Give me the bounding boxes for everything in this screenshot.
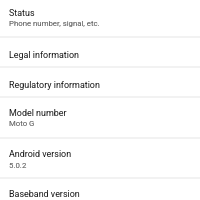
- staticText: Status: [9, 8, 35, 18]
- staticText: Baseband version: [9, 189, 80, 199]
- staticText: Model number: [9, 108, 67, 118]
- staticText: Baseband version: [9, 189, 80, 199]
- button[interactable]: Android version: [0, 139, 200, 179]
- staticText: Android version: [9, 149, 72, 159]
- staticText: Model number: [9, 108, 67, 118]
- staticText: Moto G: [9, 119, 35, 128]
- staticText: Legal information: [9, 50, 79, 60]
- staticText: Android version: [9, 149, 72, 159]
- staticText: 5.0.2: [9, 161, 27, 170]
- button[interactable]: Model number: [0, 98, 200, 139]
- staticText: Phone number, signal, etc.: [9, 19, 100, 28]
- staticText: 5.0.2: [9, 161, 27, 170]
- staticText: Status: [9, 8, 35, 18]
- button[interactable]: Status: [0, 0, 200, 38]
- button[interactable]: Baseband version: [0, 179, 200, 200]
- staticText: Moto G: [9, 119, 35, 128]
- staticText: Regulatory information: [9, 80, 100, 90]
- button[interactable]: Legal information: [0, 38, 200, 68]
- staticText: Legal information: [9, 50, 79, 60]
- staticText: Phone number, signal, etc.: [9, 19, 100, 28]
- staticText: Regulatory information: [9, 80, 100, 90]
- button[interactable]: Regulatory information: [0, 68, 200, 98]
